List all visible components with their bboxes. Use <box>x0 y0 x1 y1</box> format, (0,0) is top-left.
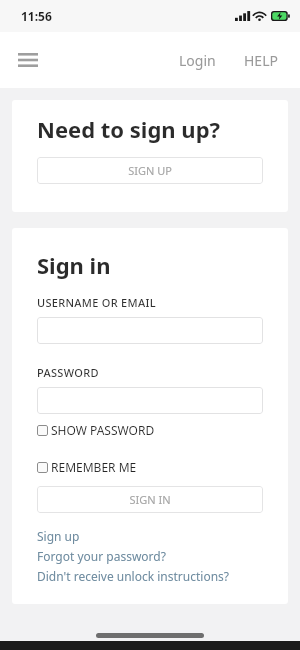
button[interactable]: Forgot your password? <box>37 548 166 564</box>
button[interactable]: SHOW PASSWORD <box>37 422 155 438</box>
staticText: Sign up <box>37 528 80 544</box>
staticText: Didn't receive unlock instructions? <box>37 568 230 584</box>
button[interactable]: Login <box>171 43 224 78</box>
staticText: REMEMBER ME <box>51 459 137 475</box>
staticText: Login <box>179 51 216 70</box>
staticText: SIGN UP <box>128 163 172 178</box>
staticText: Sign in <box>37 250 111 280</box>
button[interactable]: Sign up <box>37 528 80 544</box>
button[interactable]: Text field <box>37 317 263 344</box>
staticText: HELP <box>244 51 278 70</box>
button[interactable]: SIGN UP <box>37 157 263 184</box>
button[interactable]: Text field <box>37 387 263 414</box>
staticText: 11:56 <box>21 8 52 24</box>
button[interactable]: SIGN IN <box>37 486 263 513</box>
button[interactable]: Menu <box>6 38 50 82</box>
staticText: PASSWORD <box>37 365 99 380</box>
staticText: Need to sign up? <box>37 114 221 144</box>
staticText: Forgot your password? <box>37 548 166 564</box>
staticText: USERNAME OR EMAIL <box>37 295 156 310</box>
button[interactable]: REMEMBER ME <box>37 459 137 475</box>
staticText: SIGN IN <box>129 492 171 507</box>
button[interactable]: HELP <box>236 43 286 78</box>
staticText: SHOW PASSWORD <box>51 422 155 438</box>
button[interactable]: Didn't receive unlock instructions? <box>37 568 230 584</box>
